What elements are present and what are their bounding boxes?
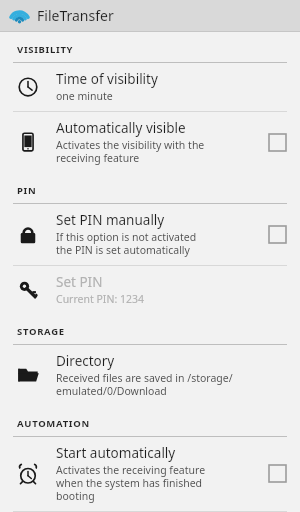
button[interactable]: Start automatically [0, 437, 300, 511]
button[interactable]: Set PIN [0, 266, 300, 314]
staticText: STORAGE [17, 325, 65, 338]
staticText: Automatically visible [56, 119, 186, 137]
staticText: AUTOMATION [17, 417, 90, 430]
staticText: Activates the receiving feature when the… [56, 463, 206, 503]
button[interactable]: Toggle Set PIN manually [269, 226, 286, 243]
button[interactable]: Time of visibility [0, 63, 300, 111]
staticText: If this option is not activated the PIN … [56, 230, 197, 257]
staticText: Set PIN manually [56, 211, 165, 229]
staticText: PIN [17, 184, 37, 197]
button[interactable]: Automatically visible [0, 112, 300, 173]
staticText: Time of visibility [56, 70, 158, 88]
staticText: Set PIN [56, 273, 103, 291]
button[interactable]: Toggle Start automatically [269, 465, 286, 482]
button[interactable]: FileTransfer [0, 0, 300, 31]
button[interactable]: Set PIN manually [0, 204, 300, 265]
staticText: VISIBILITY [17, 43, 74, 56]
staticText: FileTransfer [37, 6, 114, 25]
staticText: Current PIN: 1234 [56, 292, 144, 306]
button[interactable]: Directory [0, 345, 300, 406]
staticText: one minute [56, 89, 113, 103]
button[interactable]: Toggle Automatically visible [269, 134, 286, 151]
staticText: Start automatically [56, 444, 176, 462]
staticText: Activates the visibility with the receiv… [56, 138, 205, 165]
staticText: Directory [56, 352, 115, 370]
staticText: Received files are saved in /storage/ em… [56, 371, 233, 398]
